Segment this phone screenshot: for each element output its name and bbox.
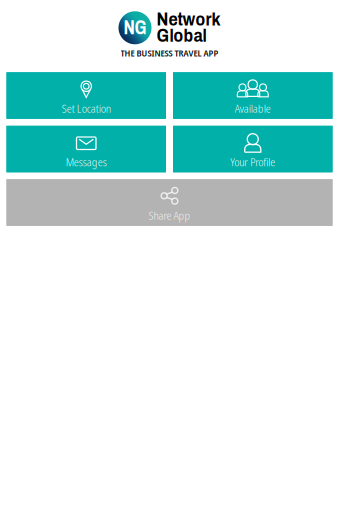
staticText: Messages [66,154,107,170]
staticText: Set Location [62,101,111,116]
staticText: Share App [148,208,190,223]
staticText: Global [156,26,206,46]
button[interactable]: Set Location [6,72,166,119]
staticText: NG [123,17,146,38]
button[interactable]: Messages [6,126,166,172]
button[interactable]: Your Profile [173,126,332,172]
staticText: Available [235,101,271,116]
staticText: THE BUSINESS TRAVEL APP [120,47,218,59]
staticText: Network [156,10,220,29]
button[interactable]: Share App [6,179,332,226]
button[interactable]: Available [173,72,332,119]
staticText: Your Profile [230,154,275,170]
